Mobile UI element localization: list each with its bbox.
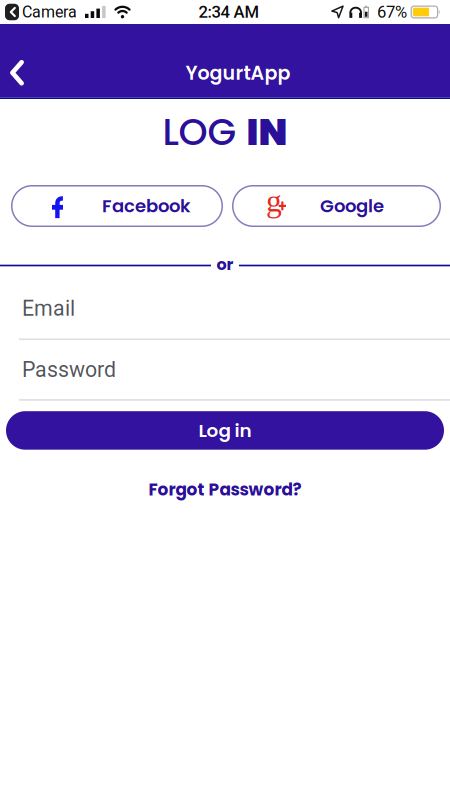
button[interactable]: Password bbox=[0, 357, 450, 401]
button[interactable]: Back bbox=[0, 36, 25, 87]
staticText: Log in bbox=[198, 418, 251, 443]
staticText: g bbox=[266, 183, 282, 218]
staticText: Facebook bbox=[102, 193, 191, 219]
button[interactable]: Facebook bbox=[11, 185, 223, 227]
button[interactable]: Log in bbox=[6, 411, 444, 450]
staticText: IN bbox=[246, 106, 287, 158]
staticText: Forgot Password? bbox=[148, 478, 301, 501]
staticText: Google bbox=[320, 193, 384, 219]
staticText: YogurtApp bbox=[185, 60, 290, 86]
staticText: Camera bbox=[22, 3, 77, 21]
staticText: or bbox=[216, 253, 233, 276]
button[interactable]: g bbox=[232, 185, 441, 227]
staticText: Email bbox=[22, 296, 75, 321]
button[interactable]: Back to Camera bbox=[5, 3, 77, 21]
button[interactable]: Email bbox=[0, 296, 450, 340]
staticText: 67% bbox=[377, 2, 407, 22]
staticText: 2:34 AM bbox=[198, 2, 259, 22]
staticText: LOG bbox=[162, 106, 236, 158]
staticText: Password bbox=[22, 357, 116, 382]
button[interactable]: Forgot Password? bbox=[148, 478, 301, 501]
